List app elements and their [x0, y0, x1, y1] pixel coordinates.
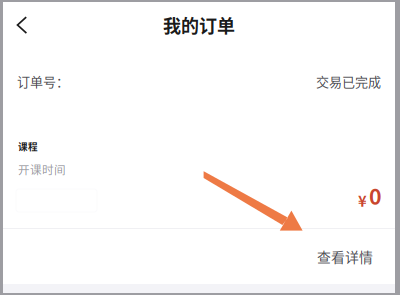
- button[interactable]: 查看详情: [295, 234, 395, 279]
- staticText: 查看详情: [317, 246, 373, 267]
- button[interactable]: Back: [3, 4, 37, 46]
- staticText: 我的订单: [163, 12, 235, 38]
- staticText: 开课时间: [18, 161, 66, 178]
- staticText: 0: [369, 180, 382, 211]
- staticText: ¥: [358, 190, 367, 211]
- staticText: 订单号：: [17, 71, 69, 90]
- staticText: 交易已完成: [316, 71, 381, 90]
- staticText: 课程: [18, 139, 38, 153]
